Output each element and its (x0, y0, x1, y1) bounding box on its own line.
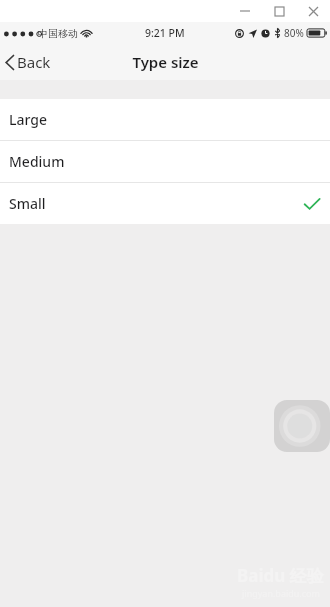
button[interactable]: Small (0, 183, 330, 224)
staticText: 中国移动 (38, 27, 78, 40)
staticText: Type size (132, 52, 199, 72)
button[interactable]: Close (296, 0, 330, 22)
button[interactable]: Maximize (262, 0, 296, 22)
button[interactable]: Minimize (228, 0, 262, 22)
staticText: 80% (284, 26, 304, 40)
button[interactable]: Large (0, 99, 330, 140)
button[interactable]: Back (0, 44, 61, 80)
button[interactable]: Medium (0, 141, 330, 182)
button[interactable]: AssistiveTouch (274, 400, 330, 452)
staticText: Small (9, 194, 46, 213)
staticText: 9:21 PM (145, 26, 185, 40)
staticText: Back (17, 52, 51, 72)
staticText: Large (9, 110, 47, 129)
staticText: Medium (9, 152, 65, 171)
